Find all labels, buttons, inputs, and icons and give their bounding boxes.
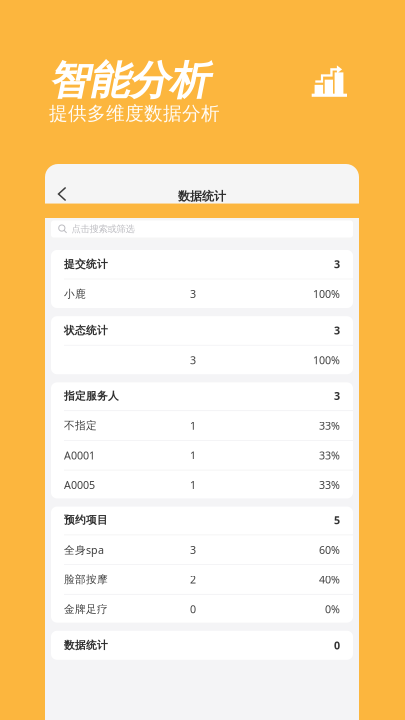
button[interactable]: 不指定 [51, 411, 353, 440]
button[interactable]: 脸部按摩 [51, 565, 353, 594]
staticText: 金牌足疗 [64, 603, 108, 616]
staticText: 3 [190, 287, 196, 301]
staticText: 不指定 [64, 419, 97, 432]
staticText: 1 [190, 448, 196, 462]
staticText: 1 [190, 478, 196, 492]
staticText: 预约项目 [64, 513, 108, 527]
staticText: 5 [334, 513, 340, 527]
staticText: 提交统计 [64, 258, 108, 271]
button[interactable]: 点击搜索或筛选 [45, 218, 359, 240]
staticText: 脸部按摩 [64, 573, 108, 586]
staticText: 33% [319, 448, 340, 462]
staticText: 3 [190, 543, 196, 557]
staticText: 智能分析 [49, 56, 209, 105]
button[interactable]: 小鹿 [51, 279, 353, 308]
staticText: 40% [319, 572, 340, 587]
staticText: 小鹿 [64, 287, 86, 300]
button[interactable]: A0001 [51, 441, 353, 470]
staticText: 点击搜索或筛选 [71, 223, 134, 235]
staticText: 3 [334, 323, 340, 337]
staticText: 60% [319, 543, 340, 557]
staticText: 0 [190, 602, 196, 616]
staticText: 数据统计 [178, 189, 226, 203]
staticText: 指定服务人 [64, 389, 119, 402]
button[interactable]: 提交统计 [51, 250, 353, 279]
staticText: 全身spa [64, 543, 104, 557]
staticText: 0% [325, 602, 340, 616]
button[interactable]: 指定服务人 [51, 381, 353, 410]
button[interactable]: 全身spa [51, 535, 353, 564]
staticText: 100% [313, 287, 340, 301]
staticText: A0005 [64, 478, 95, 492]
staticText: 100% [313, 353, 340, 367]
staticText: A0001 [64, 448, 95, 462]
staticText: 2 [190, 572, 196, 587]
staticText: 33% [319, 478, 340, 492]
staticText: 3 [334, 389, 340, 403]
staticText: 33% [319, 418, 340, 433]
staticText: 0 [334, 638, 340, 652]
staticText: 1 [190, 418, 196, 433]
button[interactable]: 金牌足疗 [51, 595, 353, 624]
button[interactable]: A0005 [51, 470, 353, 499]
button[interactable]: 预约项目 [51, 506, 353, 535]
button[interactable]: Back [58, 149, 98, 219]
button[interactable] [51, 346, 353, 375]
staticText: 数据统计 [64, 639, 108, 652]
button[interactable]: 数据统计 [51, 631, 353, 660]
staticText: 3 [190, 353, 196, 367]
staticText: 提供多维度数据分析 [49, 102, 220, 125]
staticText: 状态统计 [64, 324, 108, 337]
button[interactable]: 状态统计 [51, 316, 353, 345]
staticText: 3 [334, 257, 340, 271]
